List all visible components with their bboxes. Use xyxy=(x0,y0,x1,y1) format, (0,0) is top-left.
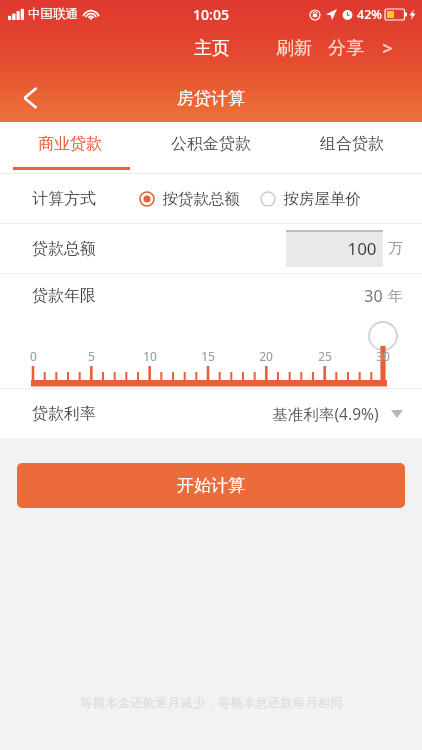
button[interactable]: 100 xyxy=(286,230,383,267)
button[interactable]: 主页 xyxy=(190,31,234,66)
button[interactable]: 公积金贷款 xyxy=(140,122,281,173)
staticText: 20 xyxy=(259,348,273,364)
staticText: 等额本金还款逐月减少，等额本息还款每月相同 xyxy=(80,695,343,711)
button[interactable]: 商业贷款 xyxy=(0,122,140,173)
button[interactable]: 组合贷款 xyxy=(281,122,422,173)
staticText: 公积金贷款 xyxy=(171,134,251,154)
button[interactable]: Back xyxy=(8,76,52,120)
staticText: 25 xyxy=(318,348,332,364)
staticText: 按房屋单价 xyxy=(283,189,361,209)
staticText: 10 xyxy=(143,348,157,364)
staticText: 15 xyxy=(201,348,215,364)
staticText: 计算方式 xyxy=(32,189,96,209)
staticText: 贷款年限 xyxy=(32,286,96,306)
button[interactable]: 按房屋单价 xyxy=(260,183,361,215)
staticText: 基准利率(4.9%) xyxy=(272,403,379,424)
button[interactable]: 贷款利率 xyxy=(0,389,422,438)
staticText: 商业贷款 xyxy=(38,134,102,154)
staticText: 刷新 xyxy=(276,37,312,60)
button[interactable]: 刷新 xyxy=(272,31,316,66)
staticText: 中国联通 xyxy=(28,6,78,22)
staticText: 30 xyxy=(364,285,383,307)
staticText: 30 xyxy=(376,348,390,364)
staticText: 主页 xyxy=(194,37,230,60)
staticText: 开始计算 xyxy=(177,475,245,496)
staticText: 万 xyxy=(388,239,403,258)
staticText: 10:05 xyxy=(193,5,229,24)
button[interactable]: Loan years slider xyxy=(0,318,422,388)
staticText: 0 xyxy=(30,348,37,364)
staticText: 贷款总额 xyxy=(32,239,96,259)
staticText: 分享 xyxy=(328,37,364,60)
button[interactable]: 分享 xyxy=(324,31,368,66)
button[interactable]: 按贷款总额 xyxy=(139,183,240,215)
staticText: 组合贷款 xyxy=(320,134,384,154)
staticText: 贷款利率 xyxy=(32,404,96,424)
staticText: 42% xyxy=(357,6,382,23)
staticText: 100 xyxy=(347,237,377,260)
button[interactable]: More xyxy=(378,30,397,67)
staticText: 按贷款总额 xyxy=(162,189,240,209)
staticText: 5 xyxy=(88,348,95,364)
staticText: 年 xyxy=(388,287,403,305)
staticText: 房贷计算 xyxy=(177,88,245,109)
button[interactable]: 开始计算 xyxy=(17,463,405,508)
staticText: > xyxy=(382,36,393,61)
